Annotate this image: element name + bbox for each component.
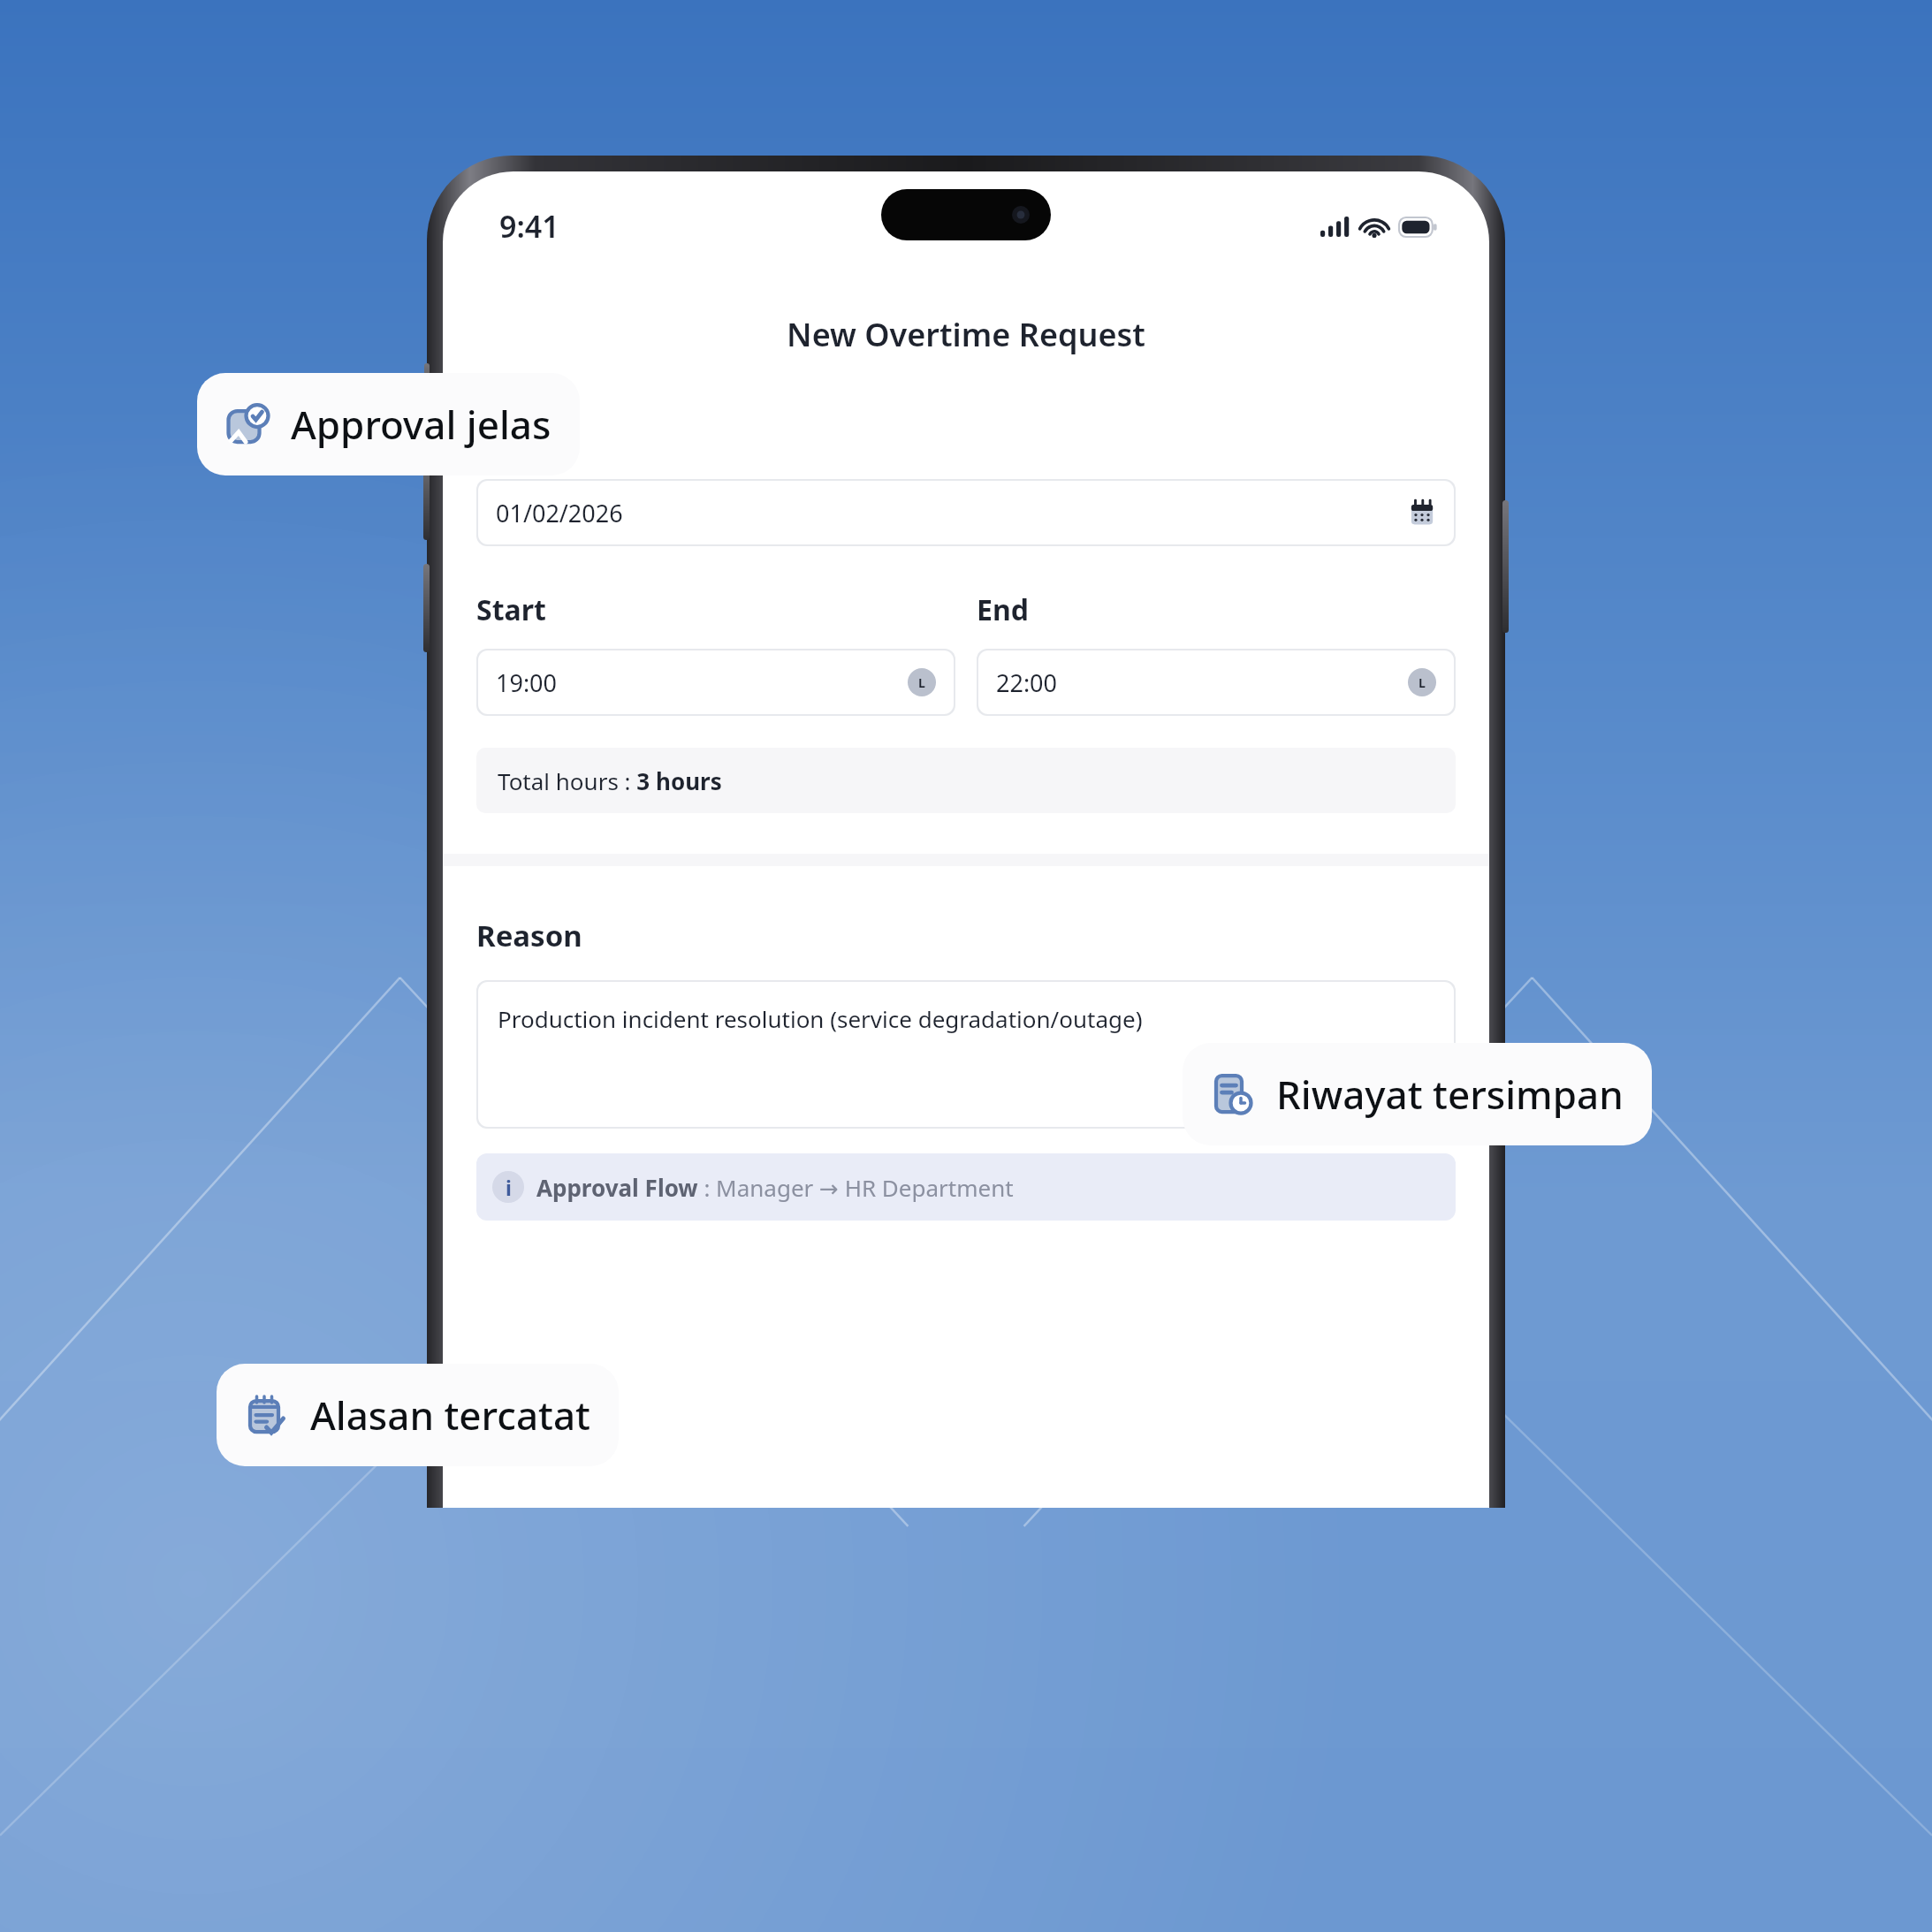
button[interactable]: 22:00 — [978, 650, 1454, 714]
staticText: 22:00 — [996, 666, 1058, 699]
other: Pick time — [908, 668, 936, 696]
button[interactable]: i — [476, 1153, 1456, 1221]
other: Pick time — [1408, 668, 1436, 696]
button[interactable]: Total hours : 3 hours — [476, 748, 1456, 813]
staticText: Date — [476, 427, 531, 460]
button[interactable]: Note recorded — [217, 1364, 619, 1466]
other: Note recorded — [246, 1393, 290, 1437]
staticText: New Overtime Request — [443, 313, 1489, 356]
button[interactable]: 19:00 — [478, 650, 954, 714]
staticText: Alasan tercatat — [310, 1388, 590, 1441]
staticText: Total hours : 3 hours — [498, 765, 722, 796]
staticText: 19:00 — [496, 666, 558, 699]
staticText: i — [506, 1174, 512, 1201]
staticText: Approval Flow : Manager → HR Department — [536, 1172, 1014, 1203]
staticText: Start — [476, 590, 546, 629]
staticText: Riwayat tersimpan — [1276, 1068, 1624, 1121]
staticText: 9:41 — [499, 206, 559, 247]
button[interactable]: 01/02/2026 — [478, 481, 1454, 544]
other: History — [1212, 1072, 1256, 1116]
staticText: Reason — [476, 916, 582, 955]
staticText: L — [918, 674, 925, 691]
staticText: L — [1419, 674, 1426, 691]
staticText: Approval jelas — [291, 398, 551, 451]
staticText: 01/02/2026 — [496, 497, 623, 529]
button[interactable]: Approval — [197, 373, 580, 475]
other: Approval — [226, 402, 270, 446]
staticText: End — [977, 590, 1029, 629]
other: Pick date — [1408, 498, 1436, 527]
staticText: Production incident resolution (service … — [498, 1003, 1143, 1034]
button[interactable]: Production incident resolution (service … — [478, 982, 1454, 1127]
button[interactable]: History — [1183, 1043, 1652, 1145]
